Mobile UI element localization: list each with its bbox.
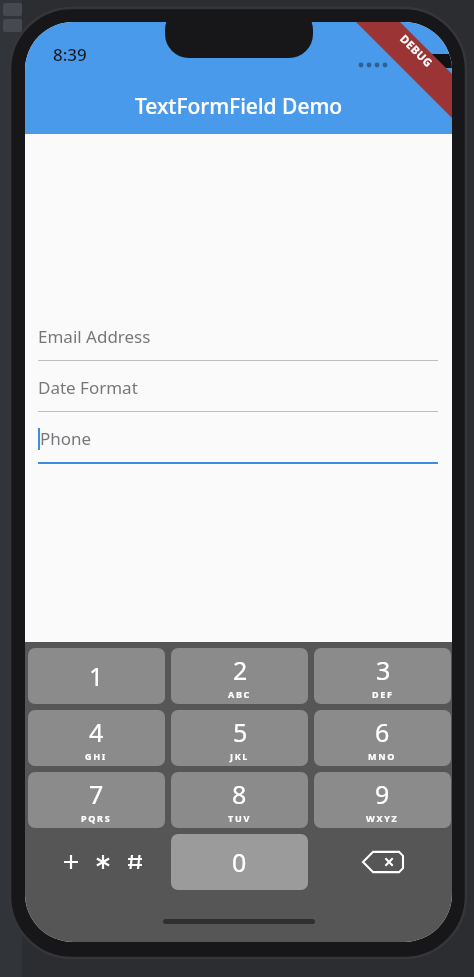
staticText: 9 <box>375 777 390 811</box>
button[interactable]: Phone <box>38 414 438 464</box>
button[interactable]: 7 <box>28 772 165 828</box>
staticText: MNO <box>368 750 397 762</box>
button[interactable]: Date Format <box>38 363 438 412</box>
staticText: ABC <box>228 688 252 700</box>
staticText: 4 <box>89 715 104 749</box>
button[interactable]: Email Address <box>38 312 438 361</box>
staticText: DEBUG <box>397 31 437 70</box>
button[interactable]: 2 <box>171 648 308 704</box>
staticText: 8 <box>232 777 247 811</box>
staticText: 3 <box>376 653 391 687</box>
staticText: 6 <box>375 715 390 749</box>
staticText: 2 <box>233 653 248 687</box>
staticText: DEF <box>372 688 394 700</box>
button[interactable]: 9 <box>314 772 451 828</box>
button[interactable]: 0 <box>171 834 308 890</box>
staticText: 7 <box>89 777 104 811</box>
staticText: TUV <box>228 812 251 824</box>
staticText: Email Address <box>38 325 151 348</box>
staticText: Date Format <box>38 376 138 399</box>
staticText: TextFormField Demo <box>135 92 343 121</box>
button[interactable]: 5 <box>171 710 308 766</box>
button[interactable]: 6 <box>314 710 451 766</box>
button[interactable]: 4 <box>28 710 165 766</box>
button[interactable]: 1 <box>28 648 165 704</box>
button[interactable]: 3 <box>314 648 451 704</box>
staticText: 8:39 <box>53 43 87 66</box>
staticText: Phone <box>40 427 92 450</box>
button[interactable]: 8 <box>171 772 308 828</box>
staticText: 0 <box>232 845 247 879</box>
button[interactable]: Symbols <box>28 834 165 890</box>
staticText: JKL <box>230 750 250 762</box>
staticText: PQRS <box>81 812 112 824</box>
staticText: WXYZ <box>366 812 399 824</box>
staticText: GHI <box>85 750 108 762</box>
staticText: 5 <box>233 715 248 749</box>
button[interactable]: Backspace <box>314 834 451 890</box>
staticText: 1 <box>89 659 104 693</box>
